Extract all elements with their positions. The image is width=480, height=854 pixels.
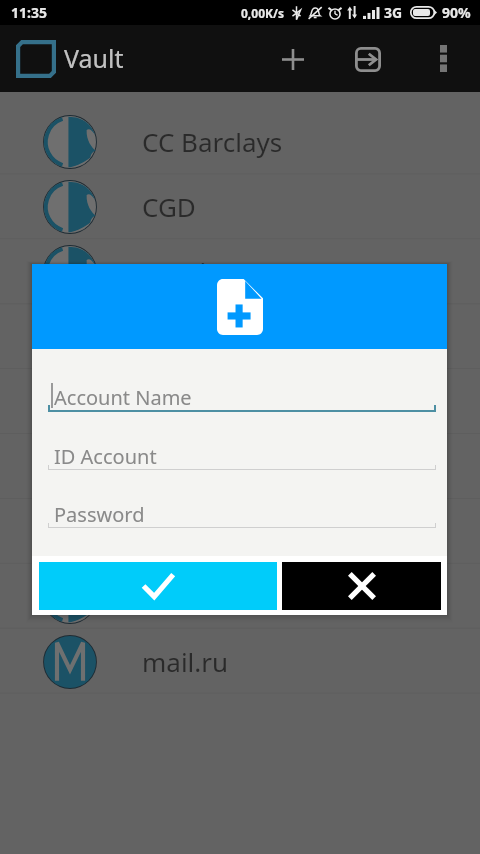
button[interactable]: Import <box>343 34 393 84</box>
staticText: mail.ru <box>142 644 229 679</box>
button[interactable]: Confirm <box>39 562 277 610</box>
staticText: 90% <box>442 3 471 22</box>
staticText: Outlook <box>142 579 240 614</box>
staticText: CC Barclays <box>142 124 283 159</box>
button[interactable]: Vault <box>10 36 62 82</box>
staticText: Google <box>142 384 230 419</box>
button[interactable]: More options <box>419 34 467 82</box>
button[interactable]: Continente <box>0 239 480 304</box>
button[interactable]: Outlook <box>0 564 480 629</box>
button[interactable]: Cancel <box>282 562 441 610</box>
button[interactable]: CC Barclays <box>0 109 480 174</box>
button[interactable]: LinkedIn <box>0 499 480 564</box>
staticText: Vault <box>64 41 124 75</box>
staticText: LinkedIn <box>142 514 248 549</box>
button[interactable]: CGD <box>0 174 480 239</box>
staticText: Instagram <box>142 449 269 484</box>
staticText: Facebook <box>142 319 259 354</box>
button[interactable]: Google <box>0 369 480 434</box>
button[interactable]: Add <box>268 34 318 84</box>
staticText: Password <box>54 501 145 528</box>
staticText: 0,00K/s <box>241 5 284 21</box>
staticText: 11:35 <box>11 3 47 22</box>
button[interactable]: mail.ru <box>0 629 480 694</box>
staticText: ID Account <box>54 443 157 470</box>
staticText: 3G <box>384 3 403 22</box>
staticText: CGD <box>142 189 196 224</box>
staticText: Continente <box>142 254 278 289</box>
button[interactable]: Facebook <box>0 304 480 369</box>
staticText: Account Name <box>54 384 192 411</box>
button[interactable]: Instagram <box>0 434 480 499</box>
